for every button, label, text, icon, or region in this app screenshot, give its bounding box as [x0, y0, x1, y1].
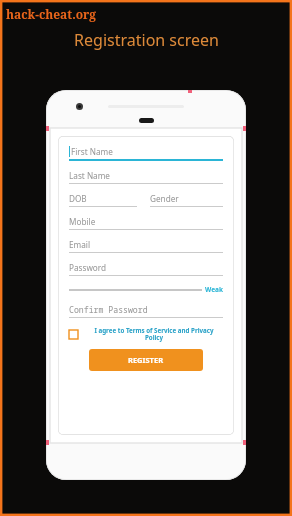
button[interactable]: First Name: [69, 146, 223, 161]
staticText: Password: [69, 262, 107, 273]
staticText: I agree to Terms of Service and Privacy …: [85, 326, 223, 342]
staticText: Email: [69, 239, 91, 250]
button[interactable]: Email: [69, 239, 223, 253]
button[interactable]: Last Name: [69, 170, 223, 184]
button[interactable]: Gender: [150, 193, 223, 207]
staticText: REGISTER: [128, 355, 164, 365]
staticText: Gender: [150, 193, 179, 204]
staticText: DOB: [69, 193, 87, 204]
button[interactable]: Agree to terms checkbox: [69, 326, 223, 342]
button[interactable]: REGISTER: [89, 349, 203, 371]
button[interactable]: Mobile: [69, 216, 223, 230]
button[interactable]: Password: [69, 262, 223, 276]
button[interactable]: Confirm Password: [69, 304, 223, 318]
other: Agree to terms checkbox: [69, 330, 78, 339]
staticText: Weak: [205, 285, 223, 294]
staticText: Last Name: [69, 170, 110, 181]
staticText: First Name: [71, 146, 113, 157]
button[interactable]: DOB: [69, 193, 137, 207]
staticText: Registration screen: [74, 29, 219, 51]
staticText: Mobile: [69, 216, 96, 227]
staticText: Confirm Password: [69, 304, 148, 315]
staticText: hack-cheat.org: [6, 6, 97, 22]
